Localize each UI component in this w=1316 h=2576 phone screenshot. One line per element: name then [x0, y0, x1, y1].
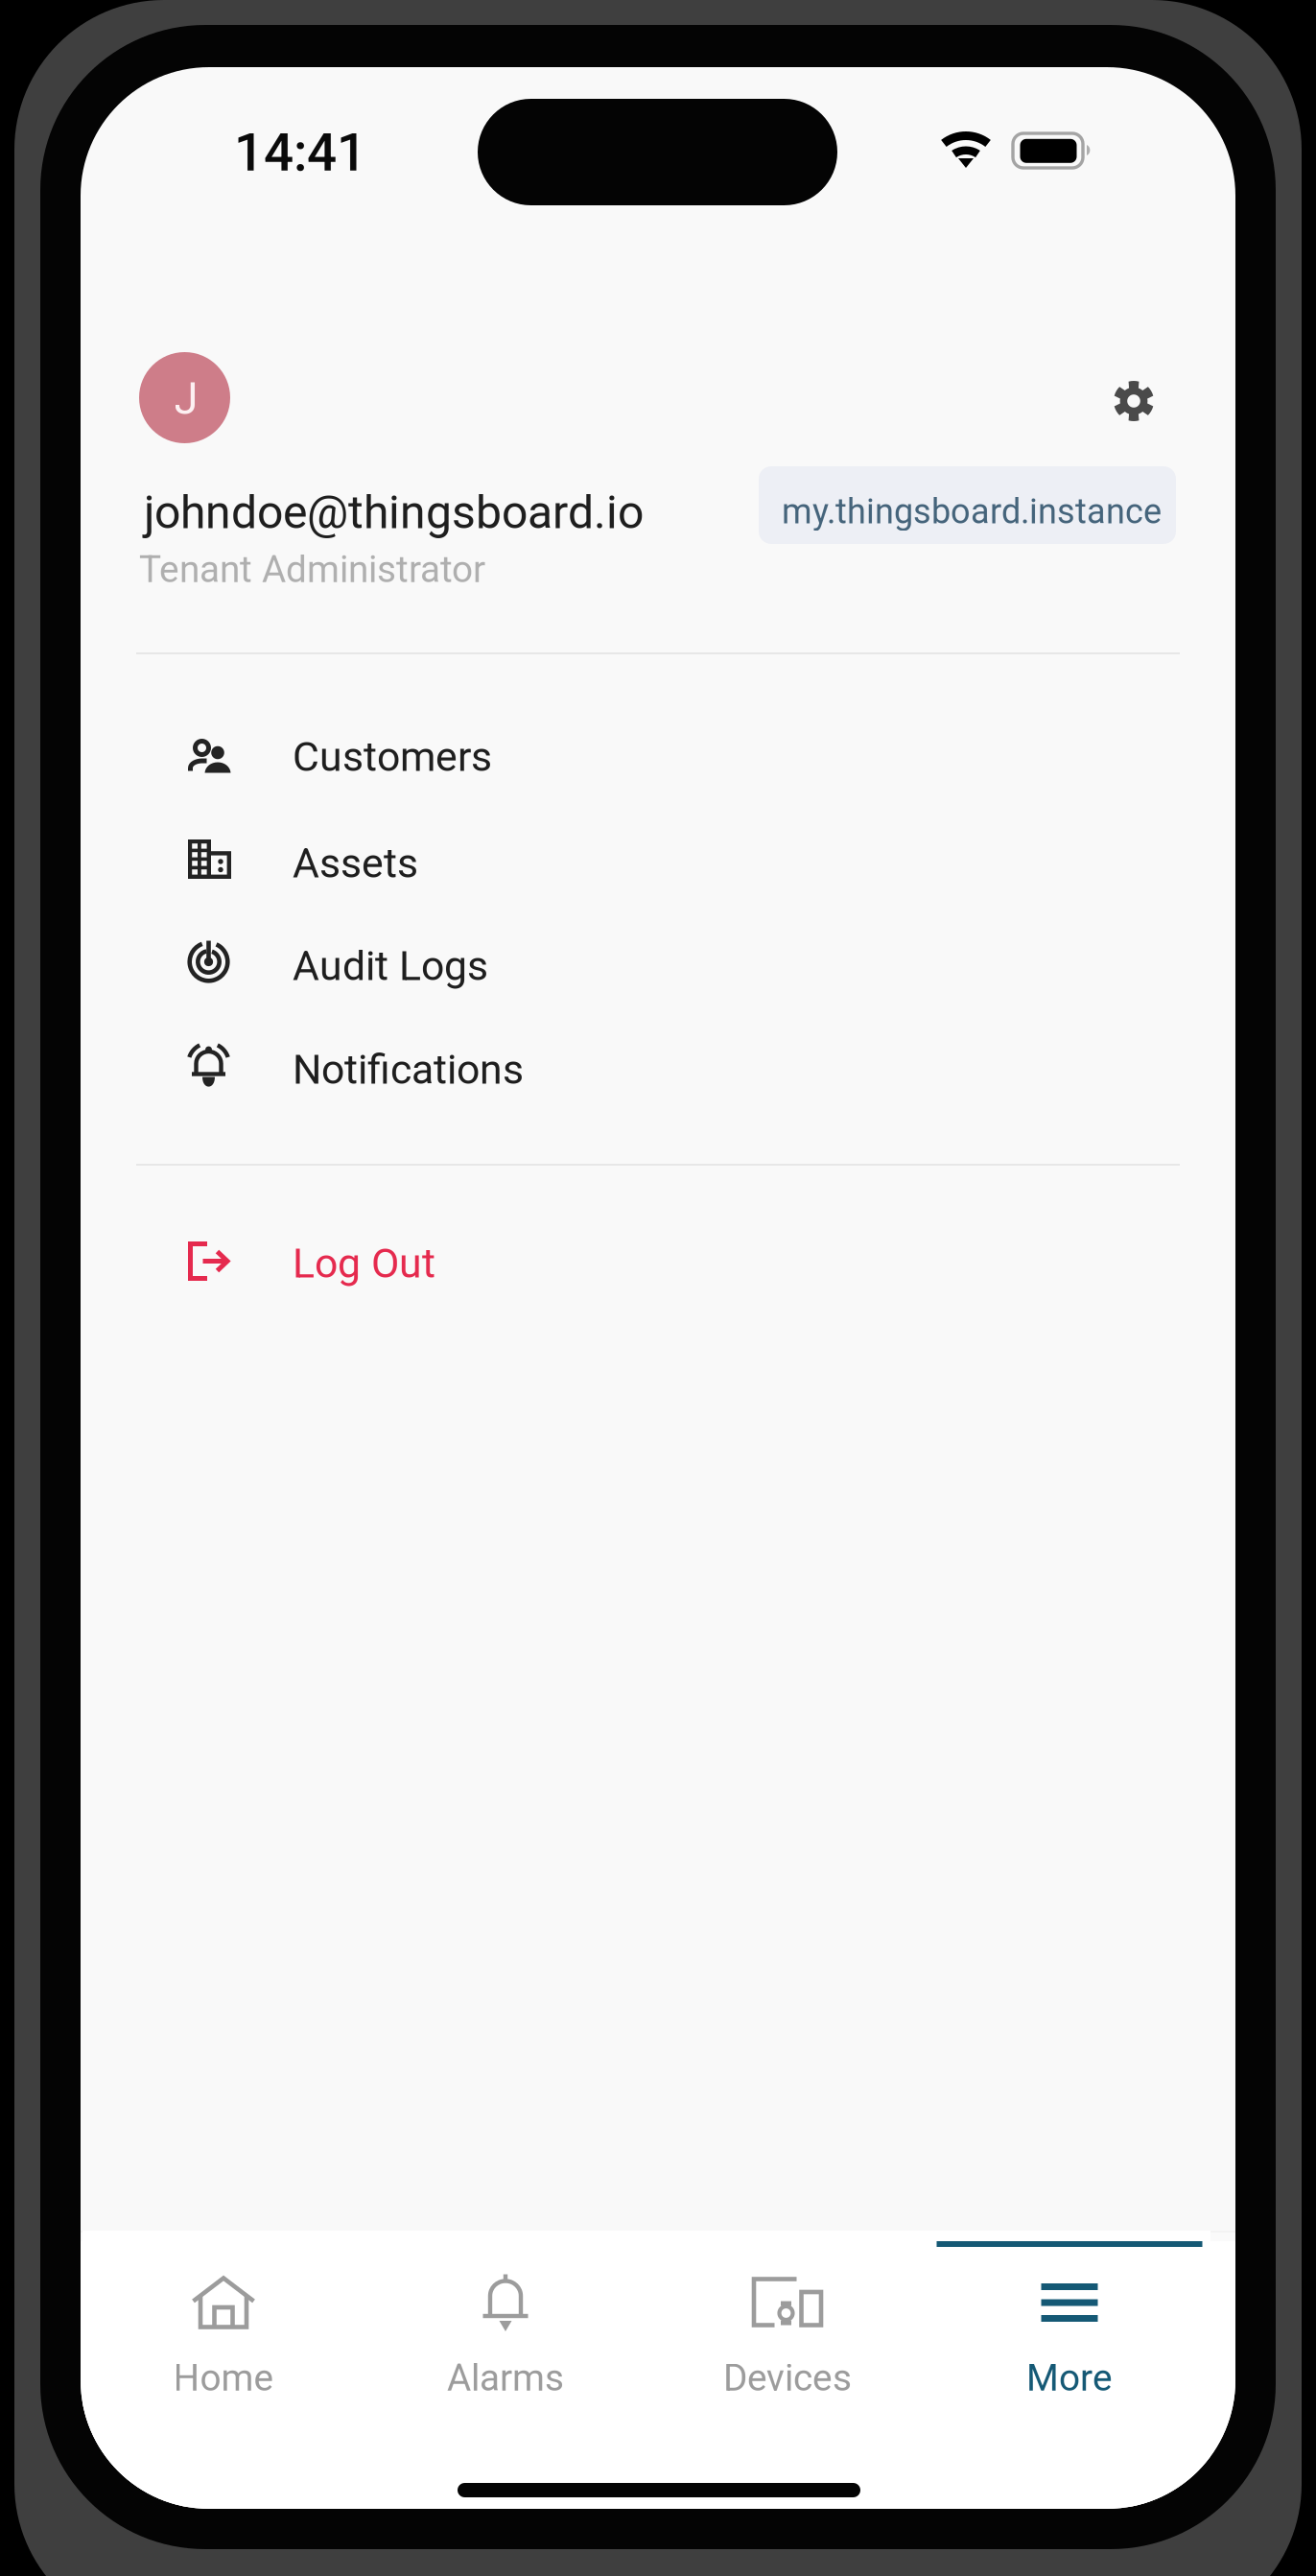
button[interactable]: Devices: [646, 2231, 928, 2507]
staticText: my.thingsboard.instance: [782, 491, 1162, 532]
button[interactable]: More: [928, 2231, 1210, 2507]
staticText: johndoe@thingsboard.io: [144, 485, 644, 539]
staticText: Home: [173, 2356, 274, 2400]
button[interactable]: Notifications: [136, 1015, 1180, 1116]
button[interactable]: Customers: [136, 705, 1180, 806]
staticText: Assets: [293, 839, 418, 887]
staticText: J: [174, 374, 198, 425]
staticText: Tenant Administrator: [139, 548, 485, 591]
staticText: Customers: [293, 733, 492, 781]
staticText: Devices: [723, 2356, 852, 2400]
button[interactable]: Alarms: [364, 2231, 646, 2507]
button[interactable]: Settings: [1093, 360, 1174, 442]
staticText: More: [1026, 2356, 1113, 2400]
staticText: 14:41: [234, 122, 366, 183]
button[interactable]: Home: [82, 2231, 364, 2507]
staticText: Notifications: [293, 1046, 524, 1094]
staticText: Log Out: [293, 1240, 435, 1288]
button[interactable]: Audit Logs: [136, 910, 1180, 1011]
button[interactable]: Assets: [136, 808, 1180, 909]
button[interactable]: Log Out: [136, 1212, 1180, 1312]
staticText: Alarms: [447, 2356, 564, 2400]
button[interactable]: my.thingsboard.instance: [759, 466, 1176, 544]
button[interactable]: J: [134, 352, 748, 603]
staticText: Audit Logs: [293, 942, 488, 990]
